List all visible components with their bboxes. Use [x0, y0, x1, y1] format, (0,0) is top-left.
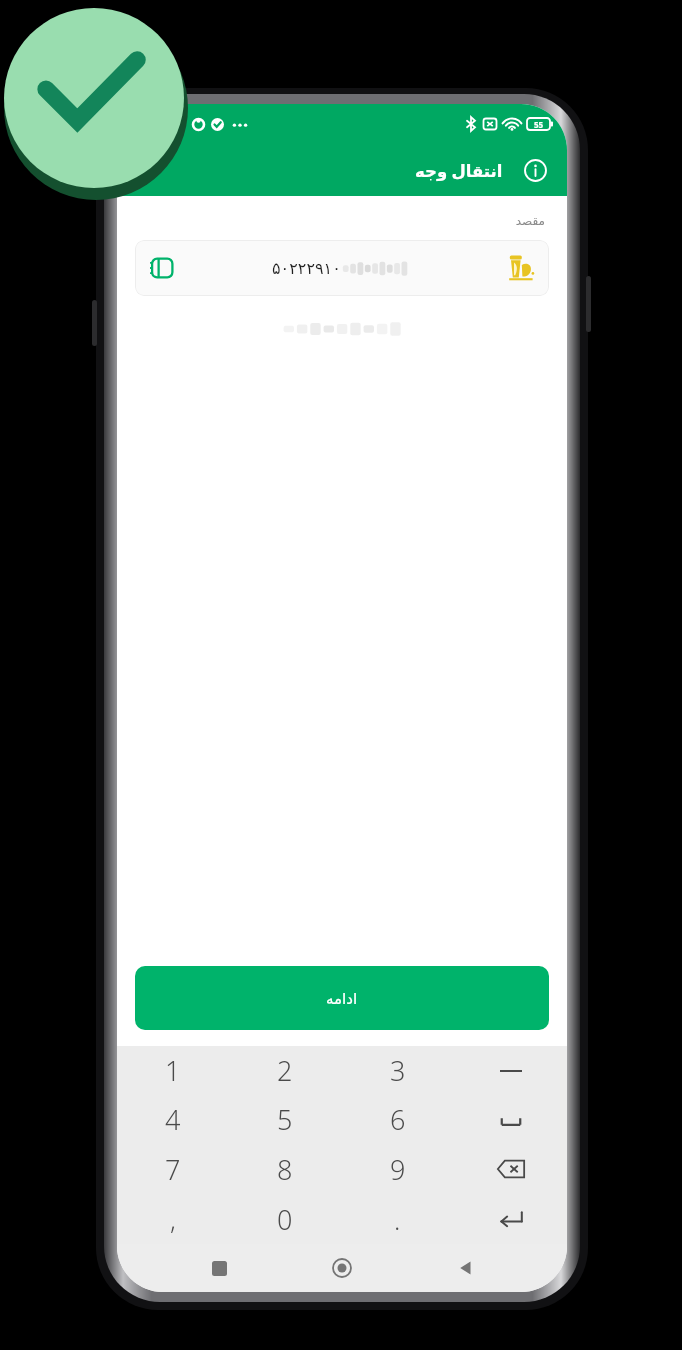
staticText: 5	[277, 1101, 293, 1138]
button[interactable]: ادامه	[135, 966, 549, 1030]
button[interactable]: 0	[229, 1194, 341, 1244]
staticText: 3	[390, 1052, 406, 1089]
staticText: 6	[390, 1101, 406, 1138]
button[interactable]: Information	[515, 150, 555, 190]
button[interactable]: 1	[117, 1046, 229, 1095]
staticText: انتقال وجه	[415, 159, 503, 181]
button[interactable]: ۵۰۲۲۲۹۱۰	[135, 240, 549, 296]
button[interactable]: 7	[117, 1144, 229, 1194]
staticText: 2	[277, 1052, 293, 1089]
button[interactable]: 6	[341, 1095, 454, 1144]
button[interactable]: .	[341, 1194, 454, 1244]
button[interactable]: 5	[229, 1095, 341, 1144]
button[interactable]: space	[454, 1095, 567, 1144]
button[interactable]: Back	[127, 148, 171, 192]
button[interactable]: minus	[454, 1046, 567, 1095]
button[interactable]: ,	[117, 1194, 229, 1244]
staticText: 7	[165, 1151, 181, 1188]
staticText: .	[394, 1202, 401, 1237]
button[interactable]: enter	[454, 1194, 567, 1244]
button[interactable]: Home	[320, 1246, 364, 1290]
button[interactable]: 8	[229, 1144, 341, 1194]
button[interactable]: Back	[444, 1246, 488, 1290]
staticText: 55	[534, 119, 544, 130]
staticText: ,	[170, 1202, 176, 1237]
button[interactable]: back	[454, 1144, 567, 1194]
staticText: مقصد	[117, 214, 545, 228]
button[interactable]: 3	[341, 1046, 454, 1095]
staticText: 4	[165, 1101, 181, 1138]
staticText: ۵۰۲۲۲۹۱۰	[272, 259, 341, 278]
staticText: 1	[165, 1052, 181, 1089]
button[interactable]: 4	[117, 1095, 229, 1144]
staticText: 9	[390, 1151, 406, 1188]
staticText: ادامه	[326, 990, 358, 1007]
staticText: 0	[277, 1201, 293, 1238]
button[interactable]: 2	[229, 1046, 341, 1095]
staticText: 8	[277, 1151, 293, 1188]
button[interactable]: Recents	[197, 1246, 241, 1290]
button[interactable]: 9	[341, 1144, 454, 1194]
